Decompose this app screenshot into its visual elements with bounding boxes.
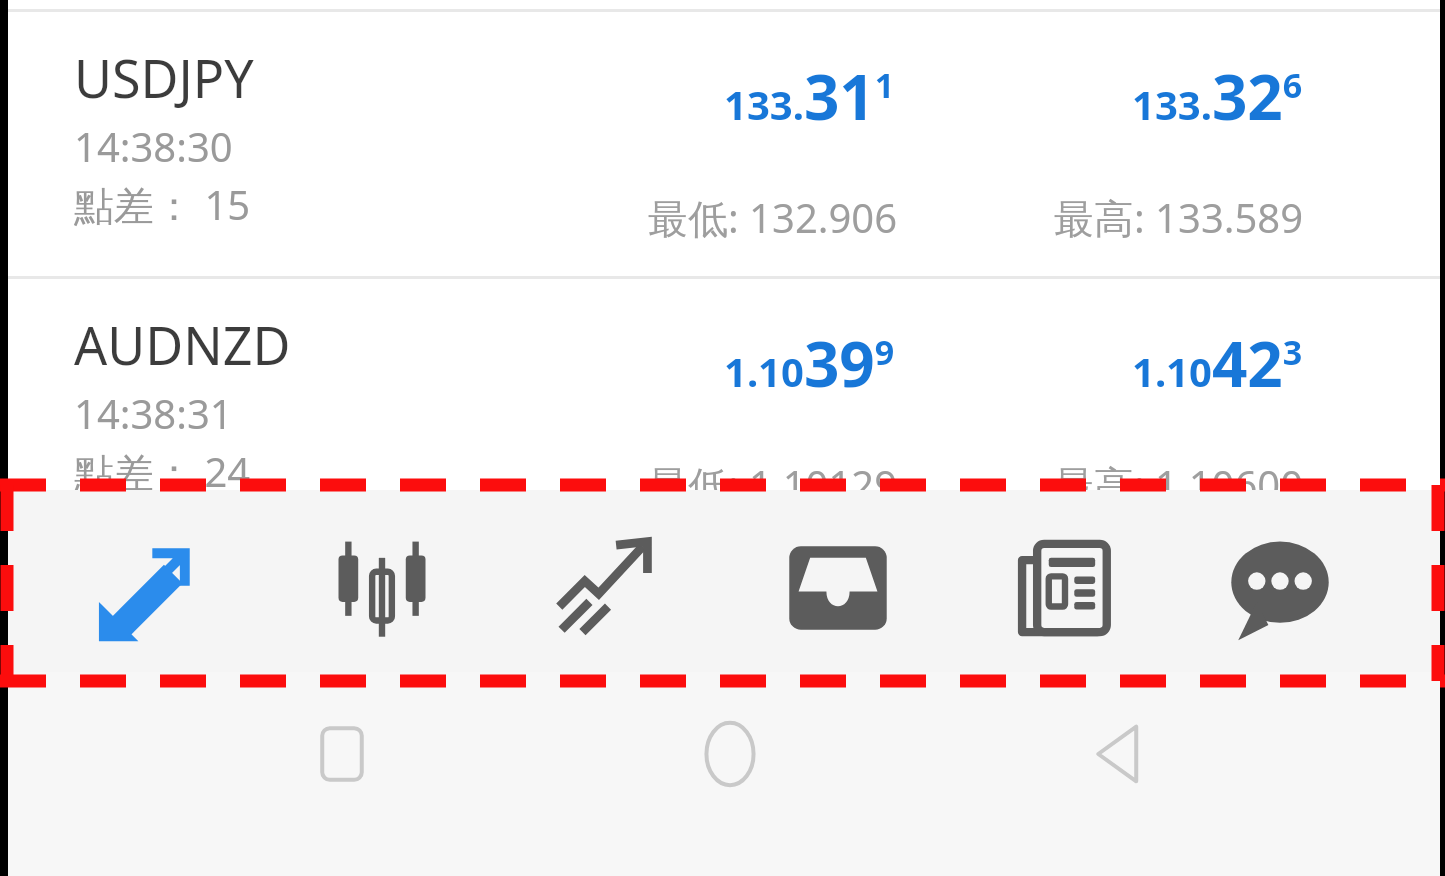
button[interactable]: Quotes [92, 530, 208, 646]
staticText: 14:38:31 [74, 386, 233, 440]
button[interactable]: History [780, 530, 896, 646]
staticText: 1.10423 [1132, 321, 1303, 405]
staticText: 最高: 133.589 [1054, 190, 1304, 245]
staticText: 點差： 15 [74, 177, 251, 232]
staticText: 133.311 [724, 54, 895, 138]
staticText: 最低: 1.10129 [648, 457, 898, 512]
staticText: AUDNZD [74, 309, 291, 380]
staticText: 點差： 24 [74, 444, 251, 499]
button[interactable]: News [1007, 530, 1123, 646]
button[interactable]: USDJPY [8, 12, 1440, 276]
button[interactable]: Trade [550, 530, 666, 646]
button[interactable]: Home [692, 716, 768, 792]
staticText: 最高: 1.10600 [1054, 457, 1304, 512]
staticText: 133.326 [1132, 54, 1303, 138]
button[interactable]: Messages [1222, 530, 1338, 646]
staticText: 1.10399 [724, 321, 895, 405]
button[interactable]: AUDNZD [8, 279, 1440, 491]
staticText: USDJPY [74, 42, 254, 113]
staticText: 最低: 132.906 [648, 190, 898, 245]
button[interactable]: Recents [304, 716, 380, 792]
button[interactable]: Back [1080, 716, 1156, 792]
button[interactable]: Charts [324, 530, 440, 646]
staticText: 14:38:30 [74, 119, 233, 173]
